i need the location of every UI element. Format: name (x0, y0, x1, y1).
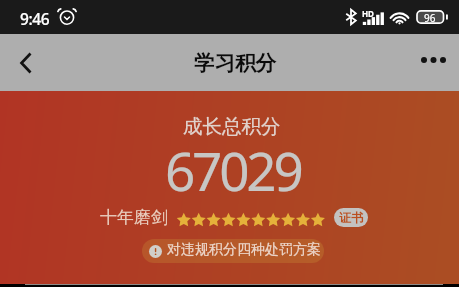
button[interactable]: Back (3, 36, 49, 89)
button[interactable]: More options (413, 34, 459, 91)
staticText: 十年磨剑 (100, 207, 168, 228)
staticText: 对违规积分四种处罚方案 (167, 241, 321, 259)
button[interactable]: 证书 (334, 208, 368, 227)
staticText: 67029 (165, 134, 301, 206)
staticText: 成长总积分 (183, 114, 281, 139)
staticText: 证书 (339, 210, 363, 225)
staticText: 学习积分 (194, 50, 276, 76)
staticText: 9:46 (20, 8, 50, 29)
staticText: HD (362, 8, 374, 19)
staticText: 96 (424, 11, 436, 25)
button[interactable]: 对违规积分四种处罚方案 (142, 239, 324, 263)
